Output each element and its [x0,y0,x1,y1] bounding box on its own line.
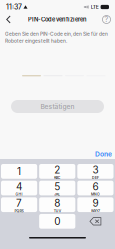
staticText: ? [104,15,108,24]
button[interactable]: 0 [39,214,75,229]
staticText: 4 [16,180,22,193]
staticText: Roboter eingestellt haben. [5,38,67,44]
staticText: 2 [54,164,60,176]
staticText: 5 [54,180,60,193]
staticText: 6 [92,180,98,193]
staticText: PIN-Code verifizieren [28,16,87,23]
button[interactable]: 1 [1,164,37,179]
staticText: 11:37 [6,3,22,11]
staticText: Geben Sie den PIN-Code ein, den Sie für … [5,31,108,37]
staticText: LTE [91,4,99,10]
button[interactable]: 7 [1,197,37,212]
button[interactable]: 8 [39,197,75,212]
staticText: 8 [54,197,60,209]
staticText: JKL [54,192,60,196]
staticText: 3 [92,164,98,176]
button[interactable]: Back [2,13,15,26]
staticText: 7 [16,197,22,209]
button[interactable]: Done [92,148,115,160]
button[interactable]: Delete [77,214,113,229]
staticText: MNO [91,192,100,196]
button[interactable]: Bestätigen [11,100,104,113]
button[interactable]: 6 [77,181,113,195]
staticText: DEF [92,175,99,180]
button[interactable]: 2 [39,164,75,179]
staticText: TUV [54,209,61,213]
staticText: 1 [17,165,21,177]
staticText: ABC [54,175,61,180]
button[interactable]: 3 [77,164,113,179]
button[interactable]: Help [100,13,113,26]
button[interactable]: 9 [77,197,113,212]
button[interactable]: 4 [1,181,37,195]
staticText: GHI [16,192,23,196]
staticText: 9 [92,197,98,209]
staticText: Done [95,150,112,158]
staticText: Bestätigen [40,102,74,111]
staticText: PQRS [15,209,24,213]
staticText: WXYZ [91,209,100,213]
button[interactable]: 5 [39,181,75,195]
staticText: 0 [54,215,60,227]
